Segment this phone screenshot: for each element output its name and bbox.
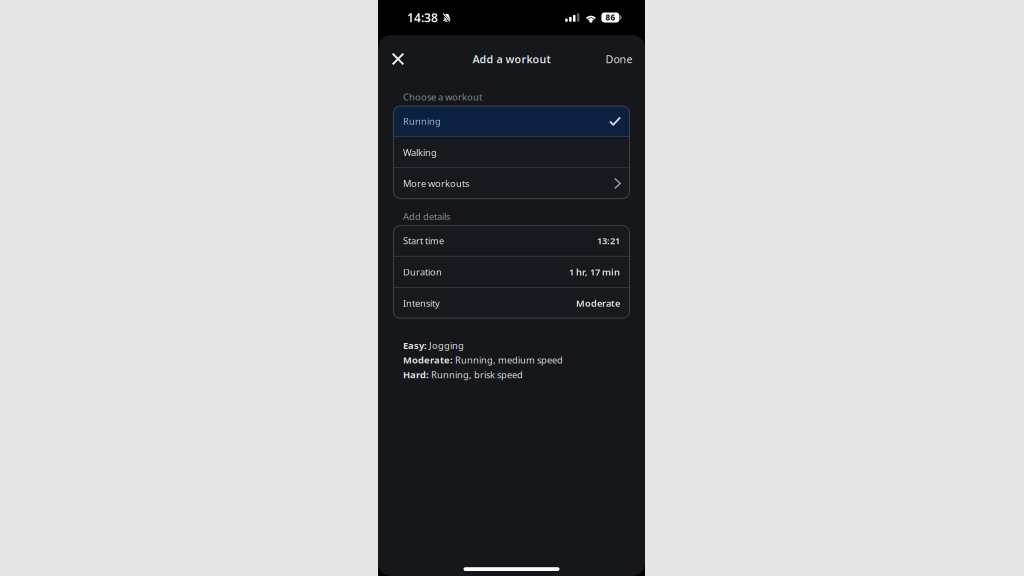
staticText: Running bbox=[403, 115, 441, 127]
staticText: Done bbox=[605, 52, 632, 66]
button[interactable]: Start time bbox=[393, 226, 629, 256]
staticText: More workouts bbox=[403, 177, 469, 190]
staticText: Add details bbox=[403, 210, 450, 223]
staticText: 1 hr, 17 min bbox=[569, 266, 620, 278]
button[interactable]: Running bbox=[393, 106, 629, 136]
staticText: Intensity bbox=[403, 297, 440, 309]
button[interactable]: Walking bbox=[393, 137, 629, 167]
staticText: 13:21 bbox=[597, 235, 620, 247]
staticText: 86 bbox=[605, 12, 615, 23]
staticText: Jogging bbox=[427, 339, 464, 352]
button[interactable]: More workouts bbox=[393, 168, 629, 199]
button[interactable]: Intensity bbox=[393, 288, 629, 318]
button[interactable]: Duration bbox=[393, 257, 629, 287]
staticText: 14:38 bbox=[407, 9, 438, 25]
staticText: Walking bbox=[403, 146, 437, 158]
staticText: Moderate bbox=[576, 297, 620, 309]
staticText: Easy: bbox=[403, 339, 427, 352]
staticText: Hard: bbox=[403, 368, 429, 381]
staticText: Add a workout bbox=[472, 52, 550, 66]
staticText: Running, medium speed bbox=[453, 354, 563, 366]
button[interactable]: Close bbox=[384, 44, 412, 73]
staticText: Duration bbox=[403, 266, 442, 278]
staticText: Choose a workout bbox=[403, 91, 482, 103]
staticText: Running, brisk speed bbox=[429, 368, 523, 381]
button[interactable]: Done bbox=[603, 44, 635, 73]
staticText: Moderate: bbox=[403, 354, 453, 366]
staticText: Start time bbox=[403, 235, 444, 247]
